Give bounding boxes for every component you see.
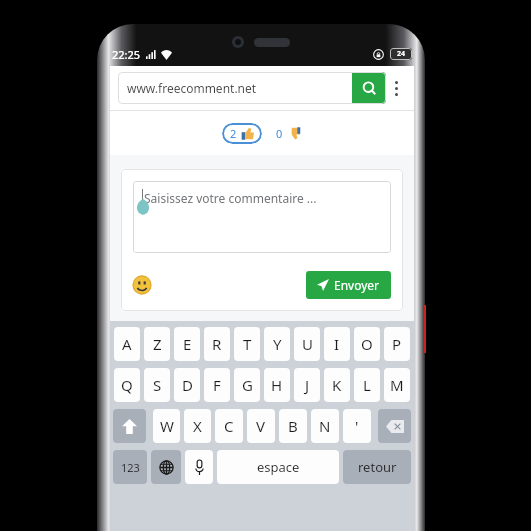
button[interactable]: H <box>264 368 290 402</box>
staticText: N <box>319 416 331 436</box>
button[interactable]: ' <box>343 409 371 443</box>
button[interactable]: M <box>384 368 410 402</box>
button[interactable]: K <box>324 368 350 402</box>
button[interactable]: Search <box>352 72 386 104</box>
staticText: J <box>305 375 310 395</box>
staticText: W <box>160 416 174 436</box>
staticText: Q <box>121 375 133 395</box>
button[interactable]: Y <box>264 327 290 361</box>
staticText: 2 <box>230 126 237 141</box>
staticText: 123 <box>121 460 140 475</box>
button[interactable]: Backspace <box>378 409 411 443</box>
staticText: R <box>212 334 222 354</box>
button[interactable]: 2 <box>222 123 262 144</box>
staticText: U <box>302 334 313 354</box>
button[interactable]: T <box>234 327 260 361</box>
staticText: 0 <box>276 126 283 141</box>
staticText: M <box>390 375 404 395</box>
button[interactable]: Z <box>144 327 170 361</box>
button[interactable]: Saisissez votre commentaire ... <box>133 181 391 253</box>
button[interactable]: Change language <box>151 450 181 484</box>
staticText: Y <box>273 334 282 354</box>
staticText: X <box>193 416 202 436</box>
staticText: S <box>153 375 162 395</box>
button[interactable]: Q <box>114 368 140 402</box>
button[interactable]: P <box>384 327 410 361</box>
staticText: espace <box>257 458 300 476</box>
button[interactable]: 0 <box>274 126 302 141</box>
staticText: P <box>392 334 402 354</box>
staticText: L <box>363 375 371 395</box>
button[interactable]: B <box>279 409 307 443</box>
staticText: www.freecomment.net <box>127 80 352 96</box>
button[interactable]: D <box>174 368 200 402</box>
staticText: K <box>332 375 342 395</box>
button[interactable]: espace <box>217 450 339 484</box>
button[interactable]: F <box>204 368 230 402</box>
button[interactable]: X <box>184 409 211 443</box>
staticText: B <box>288 416 298 436</box>
button[interactable]: www.freecomment.net <box>118 72 386 104</box>
staticText: A <box>122 334 132 354</box>
button[interactable]: U <box>294 327 320 361</box>
staticText: 22:25 <box>112 47 141 62</box>
button[interactable]: W <box>153 409 180 443</box>
staticText: F <box>213 375 221 395</box>
button[interactable]: J <box>294 368 320 402</box>
staticText: D <box>182 375 193 395</box>
button[interactable]: Emoji <box>133 276 151 294</box>
staticText: 24 <box>397 49 406 59</box>
staticText: C <box>224 416 234 436</box>
staticText: O <box>361 334 373 354</box>
button[interactable]: N <box>311 409 339 443</box>
button[interactable]: 123 <box>113 450 147 484</box>
button[interactable]: More options <box>386 66 406 110</box>
button[interactable]: S <box>144 368 170 402</box>
staticText: retour <box>358 458 397 476</box>
button[interactable]: Voice input <box>185 450 213 484</box>
button[interactable]: E <box>174 327 200 361</box>
button[interactable]: retour <box>343 450 411 484</box>
button[interactable]: I <box>324 327 350 361</box>
staticText: Saisissez votre commentaire ... <box>144 190 317 206</box>
button[interactable]: G <box>234 368 260 402</box>
button[interactable]: R <box>204 327 230 361</box>
button[interactable]: Shift <box>113 409 146 443</box>
staticText: T <box>243 334 252 354</box>
staticText: ' <box>355 416 359 436</box>
button[interactable]: A <box>114 327 140 361</box>
button[interactable]: L <box>354 368 380 402</box>
staticText: V <box>256 416 266 436</box>
button[interactable]: V <box>247 409 275 443</box>
button[interactable]: O <box>354 327 380 361</box>
button[interactable]: C <box>215 409 243 443</box>
staticText: Envoyer <box>334 277 380 293</box>
staticText: G <box>242 375 253 395</box>
button[interactable]: Envoyer <box>306 271 391 299</box>
staticText: H <box>271 375 283 395</box>
staticText: Z <box>153 334 162 354</box>
staticText: I <box>334 334 340 354</box>
staticText: E <box>183 334 192 354</box>
